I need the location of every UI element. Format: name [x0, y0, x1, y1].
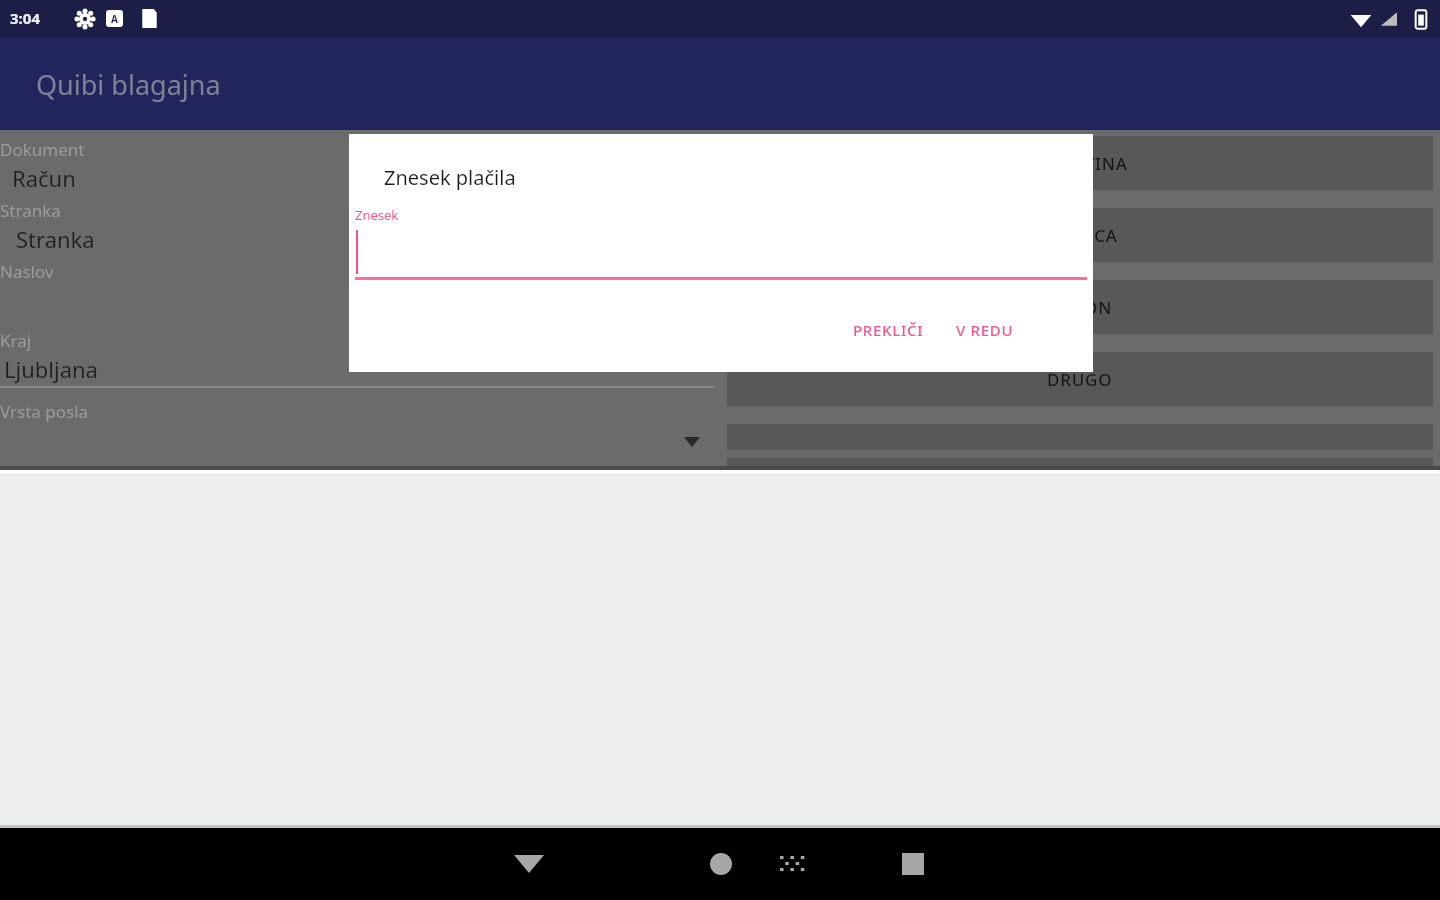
button[interactable]: Račun — [0, 161, 720, 195]
staticText: KARTICA — [1042, 224, 1118, 247]
staticText: Stranka — [16, 224, 95, 254]
staticText: Stranka — [0, 199, 61, 222]
staticText: Dokument — [0, 138, 85, 161]
button[interactable]: Hide keyboard — [498, 828, 560, 900]
button[interactable]: Switch keyboard — [764, 828, 822, 900]
staticText: PREKLIČI — [853, 320, 924, 340]
staticText: Kraj — [0, 329, 32, 352]
staticText: Znesek plačila — [384, 164, 516, 191]
button[interactable]: PREKLIČI — [843, 312, 934, 348]
button[interactable]: KARTICA — [727, 208, 1433, 262]
button[interactable]: Stranka — [0, 222, 720, 256]
button[interactable]: Ljubljana — [0, 352, 720, 386]
staticText: A — [111, 12, 118, 26]
button[interactable]: V REDU — [946, 312, 1024, 348]
staticText: GOTOVINA — [1033, 152, 1128, 175]
staticText: Naslov — [0, 260, 54, 283]
staticText: 3:04 — [10, 8, 40, 28]
staticText: Quibi blagajna — [36, 66, 221, 103]
staticText: Ljubljana — [4, 354, 98, 384]
button[interactable]: Recents — [882, 828, 944, 900]
button[interactable]: KUPON — [727, 280, 1433, 334]
staticText: Znesek — [355, 206, 399, 224]
staticText: KUPON — [1048, 296, 1113, 319]
staticText: Račun — [12, 163, 76, 193]
staticText: Vrsta posla — [0, 400, 89, 423]
staticText: V REDU — [956, 320, 1014, 340]
staticText: DRUGO — [1047, 368, 1113, 391]
button[interactable]: Home — [690, 828, 752, 900]
button[interactable]: GOTOVINA — [727, 136, 1433, 190]
button[interactable]: DRUGO — [727, 352, 1433, 406]
